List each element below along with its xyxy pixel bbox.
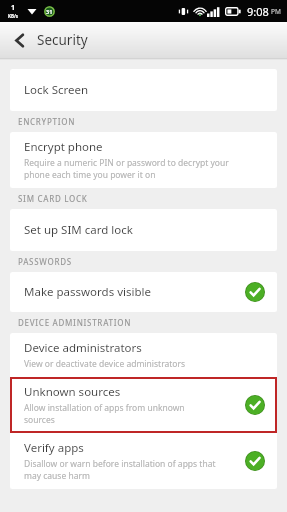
staticText: 31 xyxy=(46,8,53,15)
staticText: SIM CARD LOCK xyxy=(18,193,88,204)
staticText: Device administrators xyxy=(24,340,142,356)
button[interactable]: Unknown sources xyxy=(10,377,277,433)
staticText: Verify apps xyxy=(24,440,84,456)
staticText: Unknown sources xyxy=(24,384,121,400)
staticText: PASSWORDS xyxy=(18,256,72,267)
staticText: Lock Screen xyxy=(24,82,89,98)
staticText: PM xyxy=(271,7,281,16)
staticText: ENCRYPTION xyxy=(18,116,76,127)
button[interactable]: Encrypt phone xyxy=(10,132,277,188)
button[interactable]: Make passwords visible xyxy=(10,272,277,312)
button[interactable]: Toggle Unknown sources xyxy=(245,395,265,415)
staticText: Allow installation of apps from unknown … xyxy=(24,402,185,426)
staticText: Security xyxy=(37,31,88,49)
button[interactable]: Back to settings xyxy=(0,22,287,58)
staticText: Require a numeric PIN or password to dec… xyxy=(24,157,229,181)
button[interactable]: Verify apps xyxy=(10,433,277,489)
button[interactable]: Toggle Verify apps xyxy=(245,451,265,471)
staticText: KB/s xyxy=(8,13,19,19)
staticText: 1 xyxy=(11,3,16,13)
staticText: View or deactivate device administrators xyxy=(24,358,186,370)
button[interactable]: Lock Screen xyxy=(10,69,277,111)
button[interactable]: Set up SIM card lock xyxy=(10,209,277,251)
staticText: Disallow or warn before installation of … xyxy=(24,458,216,482)
staticText: 9:08 xyxy=(247,4,269,19)
staticText: DEVICE ADMINISTRATION xyxy=(18,317,132,328)
staticText: Set up SIM card lock xyxy=(24,222,133,238)
button[interactable]: Device administrators xyxy=(10,333,277,377)
button[interactable]: Toggle Make passwords visible xyxy=(245,282,265,302)
staticText: Encrypt phone xyxy=(24,139,103,155)
staticText: Make passwords visible xyxy=(24,284,151,300)
